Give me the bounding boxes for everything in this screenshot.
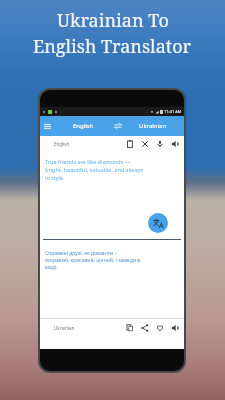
button[interactable]: Copy <box>124 322 136 334</box>
button[interactable]: Translate <box>148 213 168 233</box>
button[interactable]: Listen <box>169 322 181 334</box>
staticText: Ukrainian To <box>57 8 169 33</box>
button[interactable]: Ukrainian <box>125 122 180 130</box>
button[interactable]: English <box>54 141 70 147</box>
button[interactable]: Listen <box>169 138 181 150</box>
button[interactable]: Ukrainian <box>54 325 75 331</box>
button[interactable]: Menu <box>40 119 54 133</box>
staticText: English <box>54 141 70 147</box>
staticText: Ukrainian <box>54 325 75 331</box>
button[interactable]: Voice input <box>154 138 166 150</box>
staticText: 11:41 AM <box>164 109 182 114</box>
staticText: True friends are like diamonds — bright,… <box>45 158 143 182</box>
button[interactable]: Paste <box>124 138 136 150</box>
button[interactable]: Clear <box>139 138 151 150</box>
button[interactable]: Favorite <box>154 322 166 334</box>
staticText: English <box>73 122 94 130</box>
staticText: Справжні друзі, як діаманти – яскравий, … <box>45 250 141 271</box>
staticText: English Translator <box>33 34 192 59</box>
button[interactable]: Swap languages <box>111 119 125 133</box>
button[interactable]: English <box>56 122 111 130</box>
staticText: Ukrainian <box>139 122 167 130</box>
button[interactable]: Share <box>139 322 151 334</box>
